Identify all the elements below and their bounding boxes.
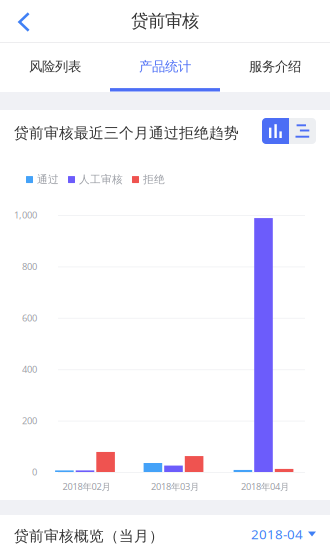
staticText: 400 bbox=[22, 363, 37, 375]
button[interactable]: 2018-04 bbox=[226, 521, 316, 547]
button[interactable]: Table view bbox=[289, 118, 316, 144]
button[interactable]: 产品统计 bbox=[110, 43, 220, 91]
button[interactable]: Bar chart view bbox=[262, 118, 289, 144]
staticText: 通过 bbox=[37, 173, 59, 186]
staticText: 人工审核 bbox=[79, 173, 123, 186]
button[interactable]: 风险列表 bbox=[0, 43, 110, 91]
staticText: 贷前审核 bbox=[131, 10, 199, 32]
staticText: 产品统计 bbox=[139, 58, 191, 75]
staticText: 0 bbox=[32, 466, 37, 478]
staticText: 贷前审核最近三个月通过拒绝趋势 bbox=[14, 124, 239, 142]
staticText: 拒绝 bbox=[143, 173, 165, 186]
staticText: 风险列表 bbox=[29, 58, 81, 75]
staticText: 2018-04 bbox=[251, 525, 303, 543]
staticText: 服务介绍 bbox=[249, 58, 301, 75]
staticText: 贷前审核概览（当月） bbox=[14, 527, 164, 545]
staticText: 800 bbox=[22, 260, 37, 273]
staticText: 1,000 bbox=[14, 209, 37, 221]
staticText: 200 bbox=[22, 414, 37, 427]
staticText: 600 bbox=[22, 312, 37, 324]
staticText: 2018年02月 bbox=[62, 480, 110, 493]
staticText: 2018年03月 bbox=[151, 480, 199, 493]
staticText: 2018年04月 bbox=[241, 480, 289, 493]
button[interactable]: Back bbox=[1, 1, 47, 43]
button[interactable]: 服务介绍 bbox=[220, 43, 330, 91]
